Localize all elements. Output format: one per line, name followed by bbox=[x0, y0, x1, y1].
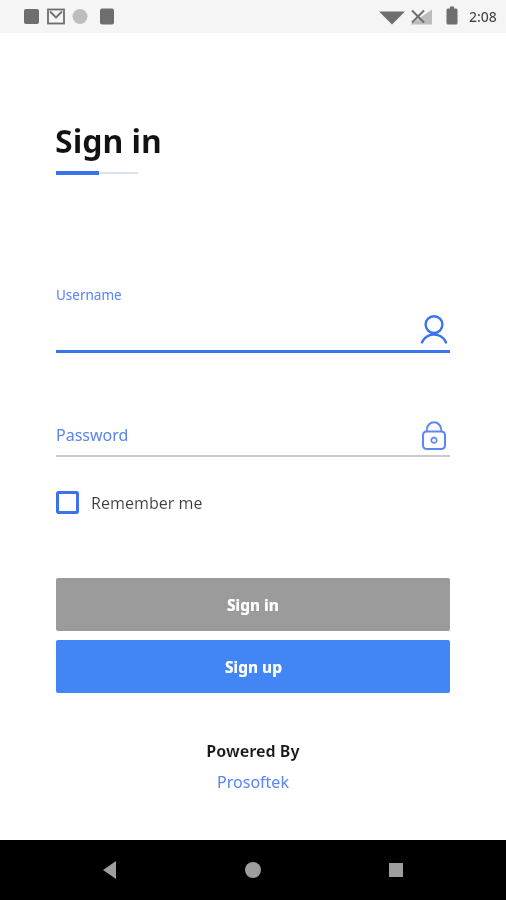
staticText: Prosoftek bbox=[217, 771, 289, 793]
staticText: 2:08 bbox=[469, 7, 497, 26]
button[interactable]: Password bbox=[56, 413, 450, 456]
button[interactable]: Remember me bbox=[56, 487, 203, 518]
button[interactable]: Prosoftek bbox=[217, 771, 289, 793]
button[interactable]: Back bbox=[95, 855, 125, 885]
staticText: Sign in bbox=[227, 594, 279, 615]
other: Username bbox=[418, 315, 450, 347]
other: Password bbox=[418, 419, 450, 451]
button[interactable]: Username bbox=[56, 286, 450, 352]
button[interactable]: Sign up bbox=[56, 640, 450, 693]
staticText: Remember me bbox=[91, 492, 203, 514]
staticText: Powered By bbox=[206, 740, 300, 762]
staticText: Password bbox=[56, 424, 129, 446]
button[interactable]: Recents bbox=[381, 855, 411, 885]
button[interactable]: Sign in bbox=[56, 578, 450, 631]
staticText: Sign in bbox=[55, 119, 162, 163]
staticText: Username bbox=[56, 286, 122, 304]
staticText: Sign up bbox=[225, 656, 282, 677]
button[interactable]: Home bbox=[238, 855, 268, 885]
